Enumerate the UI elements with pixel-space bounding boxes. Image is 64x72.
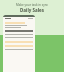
staticText: Daily Sales [0,7,64,13]
staticText: Make your task in sync [0,3,64,7]
